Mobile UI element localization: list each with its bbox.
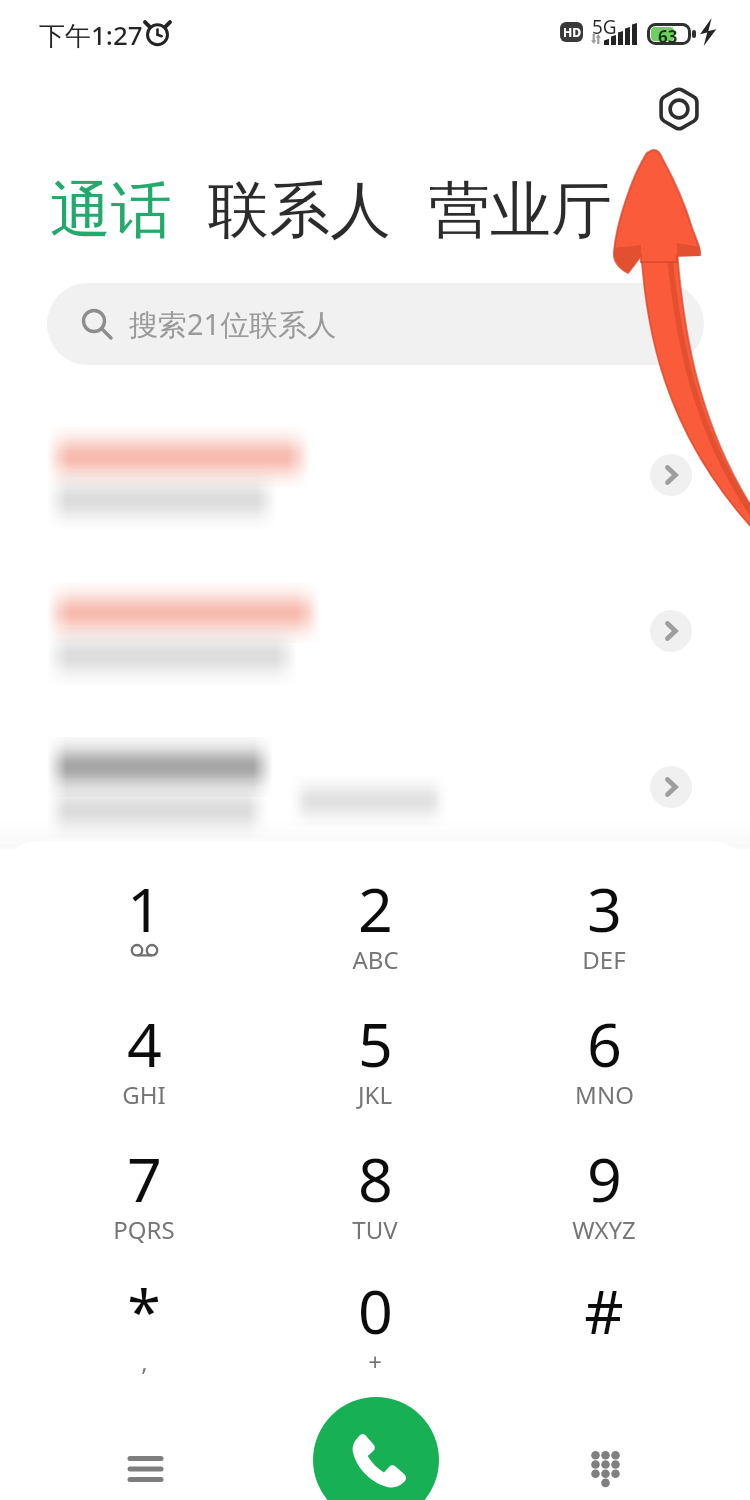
button[interactable]: 7	[59, 1136, 229, 1260]
button[interactable]: 1	[59, 866, 229, 990]
staticText: 4	[127, 1002, 162, 1085]
staticText: 通话	[50, 172, 172, 249]
button[interactable]: 0	[290, 1268, 460, 1392]
button[interactable]: 2	[290, 866, 460, 990]
staticText: 6	[587, 1002, 622, 1085]
button[interactable]: Details	[650, 610, 692, 652]
staticText: 5	[358, 1002, 393, 1085]
staticText: 营业厅	[429, 172, 612, 249]
staticText: 下午1:27	[39, 17, 143, 53]
button[interactable]: 搜索21位联系人	[47, 283, 704, 365]
staticText: JKL	[358, 1078, 392, 1111]
staticText: 1	[127, 867, 162, 950]
staticText: DEF	[582, 943, 626, 976]
staticText: PQRS	[113, 1213, 175, 1246]
staticText: ABC	[352, 943, 399, 976]
staticText: 0	[358, 1269, 393, 1352]
button[interactable]: Details	[650, 454, 692, 496]
staticText: +	[368, 1345, 382, 1378]
button[interactable]: Details	[650, 766, 692, 808]
button[interactable]: 营业厅	[429, 172, 612, 249]
button[interactable]: 8	[290, 1136, 460, 1260]
staticText: HD	[563, 24, 581, 40]
button[interactable]: Call log	[109, 1433, 181, 1500]
button[interactable]: 9	[519, 1136, 689, 1260]
button[interactable]: #	[519, 1268, 689, 1392]
button[interactable]: Details	[0, 419, 750, 571]
button[interactable]: Dialpad	[569, 1433, 641, 1500]
button[interactable]: 6	[519, 1001, 689, 1125]
staticText: 联系人	[208, 172, 391, 249]
staticText: 63	[658, 25, 678, 47]
staticText: GHI	[122, 1078, 166, 1111]
button[interactable]: *	[59, 1268, 229, 1392]
button[interactable]: Details	[0, 729, 750, 881]
staticText: 2	[358, 867, 393, 950]
staticText: 9	[587, 1137, 622, 1220]
button[interactable]: Details	[0, 575, 750, 727]
button[interactable]: Call	[313, 1397, 439, 1500]
button[interactable]: 3	[519, 866, 689, 990]
button[interactable]: 通话	[50, 172, 172, 249]
staticText: 3	[587, 867, 622, 950]
button[interactable]: 4	[59, 1001, 229, 1125]
staticText: *	[127, 1269, 161, 1352]
staticText: 5G	[592, 14, 617, 40]
staticText: 8	[358, 1137, 393, 1220]
staticText: ,	[141, 1345, 148, 1378]
staticText: TUV	[352, 1213, 398, 1246]
staticText: WXYZ	[572, 1213, 636, 1246]
button[interactable]: 5	[290, 1001, 460, 1125]
staticText: MNO	[575, 1078, 634, 1111]
staticText: 搜索21位联系人	[129, 304, 337, 344]
staticText: 7	[127, 1137, 162, 1220]
button[interactable]: Settings	[652, 82, 706, 136]
staticText: #	[584, 1269, 624, 1352]
button[interactable]: 联系人	[208, 172, 391, 249]
